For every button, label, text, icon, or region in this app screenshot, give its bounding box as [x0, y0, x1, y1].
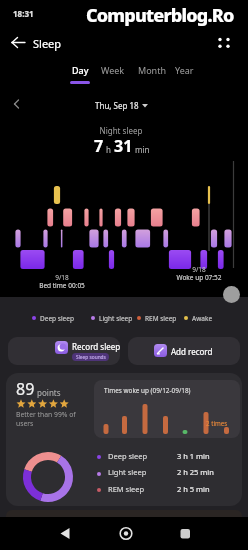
staticText: Light sleep — [99, 314, 133, 323]
staticText: min — [133, 144, 150, 155]
button[interactable]: Month — [138, 64, 166, 76]
staticText: Awake — [192, 314, 213, 323]
staticText: 31 — [114, 135, 133, 157]
button[interactable]: Thu, Sep 18 — [0, 100, 245, 111]
button[interactable] — [6, 31, 30, 53]
staticText: Computerblog.Ro — [86, 3, 234, 28]
staticText: 18:31 — [13, 8, 34, 19]
staticText: 2 times — [206, 419, 228, 427]
staticText: users — [16, 419, 34, 428]
staticText: Times woke up (09/12-09/18) — [104, 386, 191, 395]
button[interactable]: Week — [101, 64, 125, 76]
staticText: Night sleep — [0, 125, 245, 136]
staticText: Light sleep — [108, 467, 147, 477]
staticText: Sleep sounds — [76, 354, 106, 361]
staticText: Day — [72, 64, 89, 76]
button[interactable] — [52, 521, 78, 547]
button[interactable] — [214, 33, 236, 53]
button[interactable]: Add record — [128, 337, 240, 365]
button[interactable] — [113, 521, 139, 547]
staticText: Bed time 00:05 — [32, 281, 92, 290]
staticText: 2 h 25 min — [177, 467, 214, 477]
staticText: Better than 99% of — [16, 410, 76, 419]
staticText: 9/18 — [32, 273, 92, 282]
staticText: Woke up 07:52 — [169, 273, 229, 282]
staticText: 9/18 — [169, 265, 229, 274]
staticText: Add record — [171, 346, 213, 357]
staticText: points — [35, 387, 61, 398]
staticText: h — [104, 144, 114, 155]
button[interactable]: Year — [175, 64, 194, 76]
staticText: REM sleep — [145, 314, 177, 323]
staticText: REM sleep — [108, 484, 145, 494]
button[interactable] — [223, 286, 240, 303]
button[interactable] — [172, 521, 198, 547]
staticText: Deep sleep — [40, 314, 74, 323]
staticText: Deep sleep — [108, 451, 148, 461]
staticText: 89 — [16, 378, 35, 400]
staticText: 2 h 5 min — [177, 484, 210, 494]
staticText: 3 h 1 min — [177, 451, 210, 461]
staticText: 7 — [94, 135, 104, 157]
staticText: Sleep — [33, 36, 62, 51]
staticText: Record sleep — [72, 341, 120, 352]
staticText: Thu, Sep 18 — [95, 100, 139, 111]
button[interactable]: Day — [62, 64, 98, 86]
button[interactable]: Record sleep — [8, 337, 120, 365]
